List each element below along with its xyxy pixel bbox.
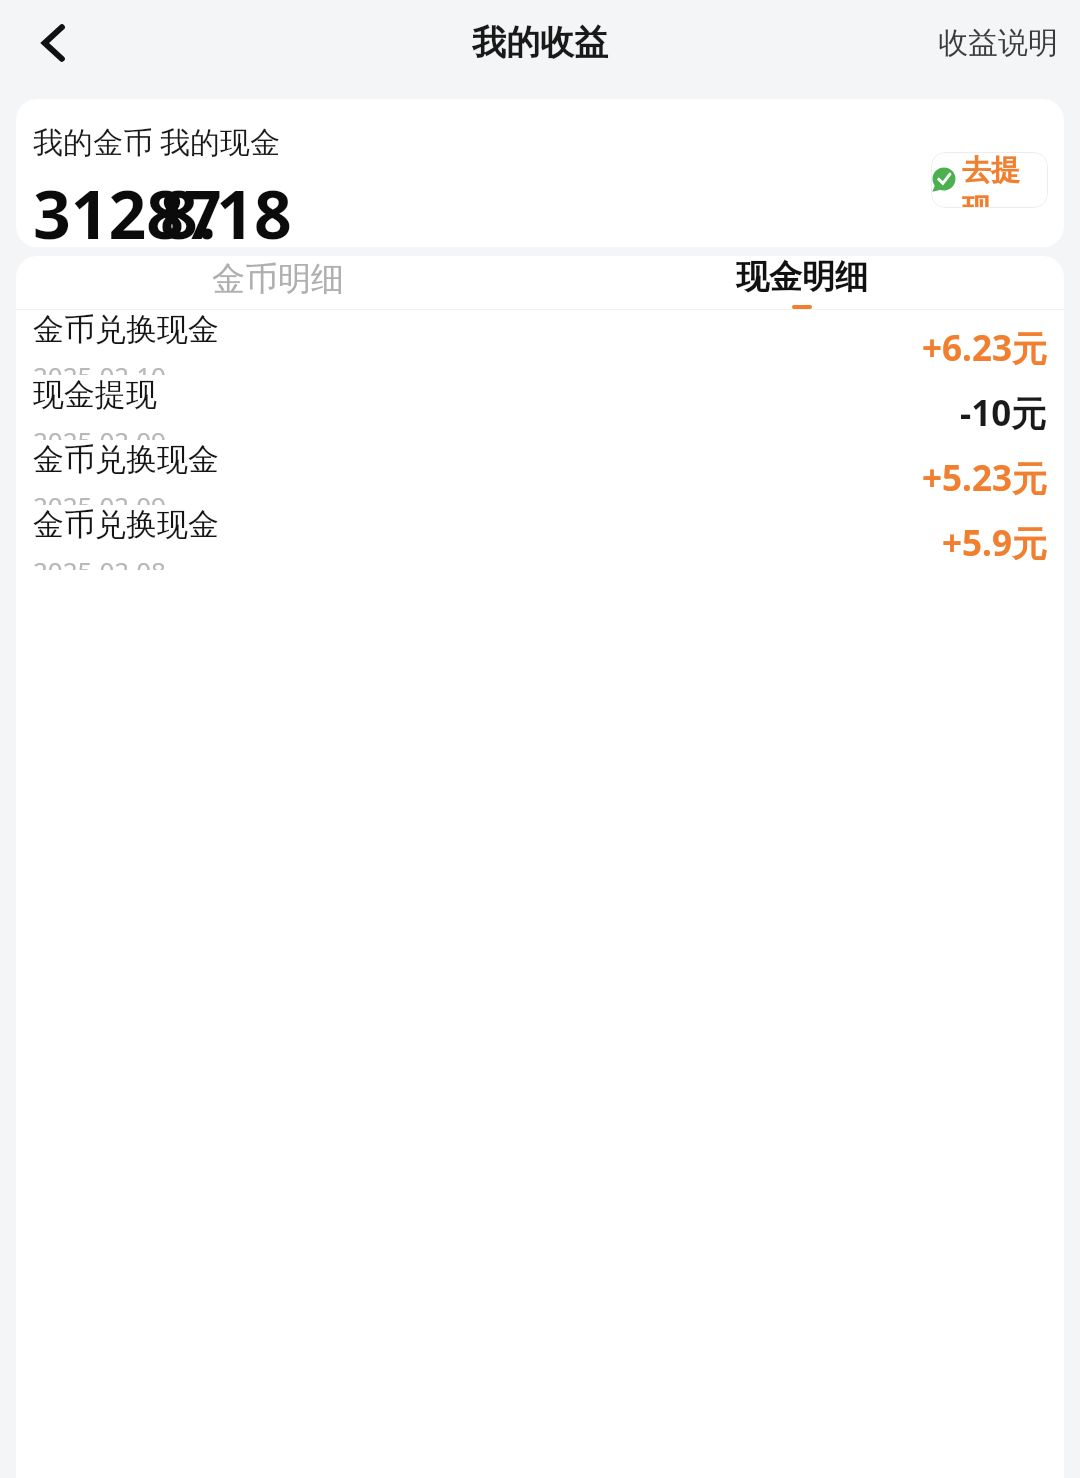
staticText: +5.23元 — [922, 454, 1047, 502]
staticText: 2025.02.10 — [33, 358, 166, 375]
staticText: 金币兑换现金 — [33, 505, 219, 544]
staticText: 金币兑换现金 — [33, 310, 219, 349]
staticText: +6.23元 — [922, 324, 1047, 372]
button[interactable]: 现金明细 — [540, 256, 1064, 309]
button[interactable]: 金币明细 — [16, 256, 540, 309]
staticText: 8.18 — [160, 168, 292, 247]
button[interactable]: 去提现 — [931, 152, 1048, 208]
staticText: 金币明细 — [212, 258, 344, 300]
staticText: 2025.02.08 — [33, 553, 166, 570]
button[interactable]: 金币兑换现金 — [16, 440, 1064, 505]
staticText: +5.9元 — [942, 519, 1047, 567]
staticText: 去提现 — [962, 152, 1048, 208]
button[interactable]: 金币兑换现金 — [16, 505, 1064, 570]
staticText: 我的收益 — [472, 21, 608, 64]
staticText: -10元 — [960, 389, 1047, 437]
button[interactable]: 现金提现 — [16, 375, 1064, 440]
staticText: 31287 — [33, 168, 222, 247]
button[interactable]: 收益说明 — [916, 14, 1080, 72]
staticText: 现金提现 — [33, 375, 157, 414]
button[interactable]: 金币兑换现金 — [16, 310, 1064, 375]
staticText: 金币兑换现金 — [33, 440, 219, 479]
staticText: 我的现金 — [160, 124, 280, 162]
staticText: 2025.02.09 — [33, 488, 166, 505]
button[interactable]: Back — [20, 9, 88, 77]
staticText: 2025.02.09 — [33, 423, 166, 440]
staticText: 现金明细 — [736, 256, 868, 298]
staticText: 我的金币 — [33, 124, 153, 162]
staticText: 收益说明 — [938, 24, 1058, 62]
